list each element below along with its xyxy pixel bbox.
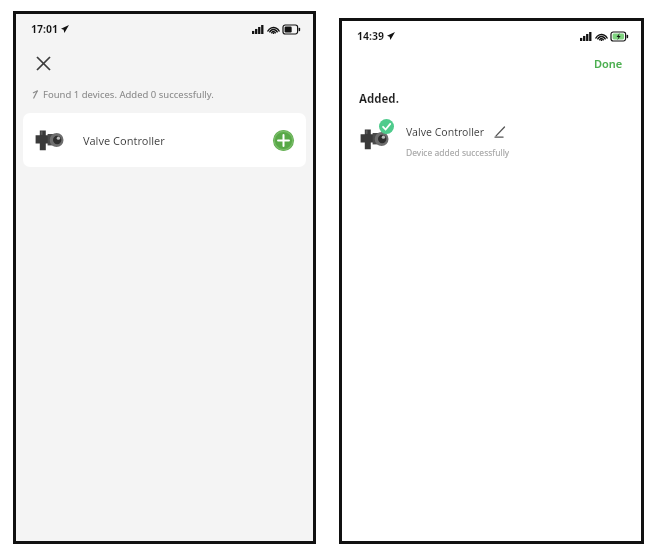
staticText: Valve Controller (406, 125, 485, 139)
button[interactable]: Done (590, 53, 627, 74)
staticText: 17:01 (31, 22, 58, 36)
button[interactable]: Rename device (493, 125, 507, 139)
staticText: Found 1 devices. Added 0 successfully. (43, 88, 214, 101)
button[interactable]: Add device (273, 130, 294, 151)
staticText: Done (594, 56, 623, 71)
button[interactable]: Valve Controller (23, 113, 306, 167)
button[interactable]: Valve Controller (342, 119, 641, 159)
button[interactable]: Close (26, 46, 60, 80)
staticText: Valve Controller (83, 133, 165, 148)
staticText: Added. (359, 91, 399, 107)
staticText: 14:39 (357, 29, 384, 43)
staticText: Device added successfully (406, 147, 510, 159)
